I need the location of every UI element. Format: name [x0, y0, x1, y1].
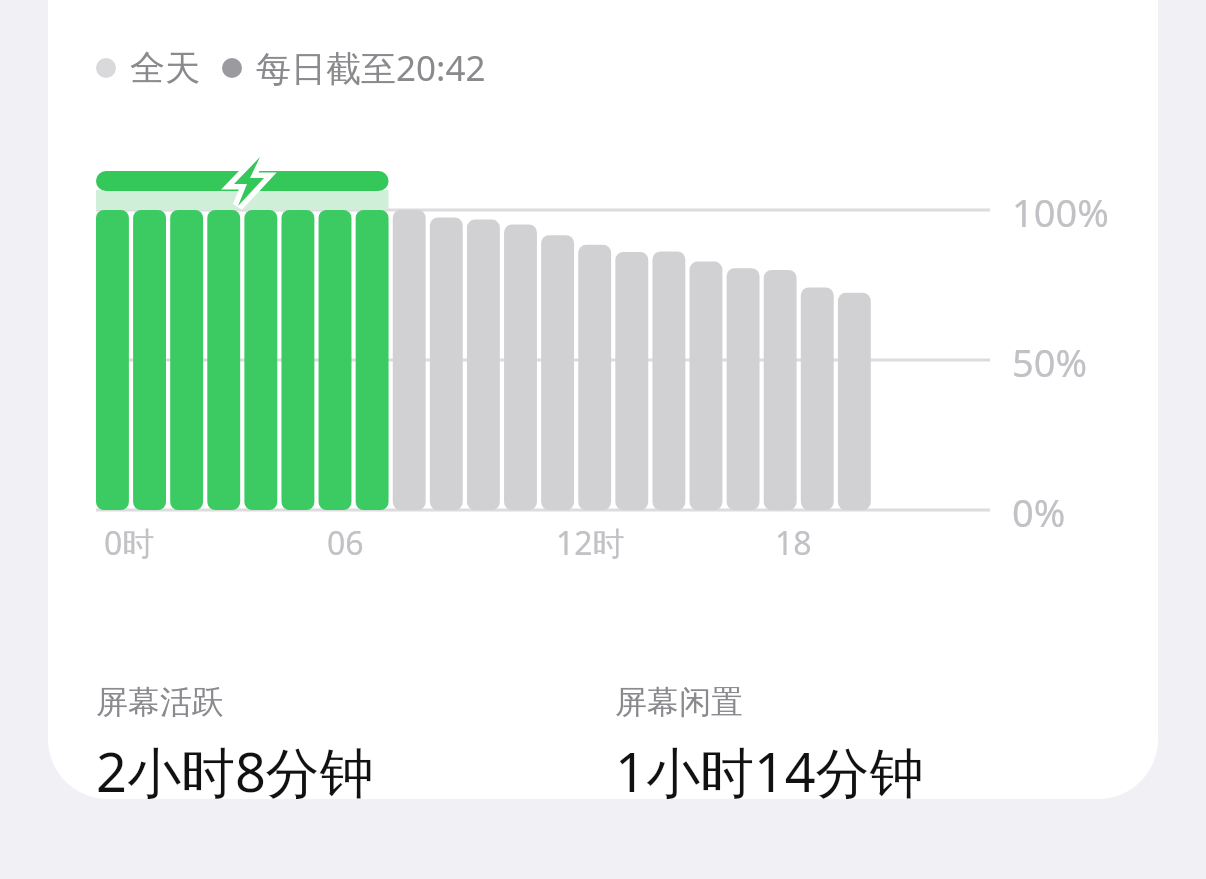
other: 电池电量图表: [0, 0, 1206, 879]
button[interactable]: 屏幕闲置: [615, 682, 924, 808]
staticText: 18: [775, 521, 812, 565]
staticText: 12时: [556, 521, 625, 565]
staticText: 2小时8分钟: [96, 734, 374, 808]
staticText: 1小时14分钟: [615, 734, 924, 808]
button[interactable]: [48, 0, 1158, 799]
button[interactable]: 全天: [96, 44, 486, 92]
staticText: 50%: [1012, 336, 1088, 388]
staticText: 每日截至20:42: [256, 44, 486, 92]
staticText: 屏幕活跃: [96, 682, 224, 722]
staticText: 06: [327, 521, 364, 565]
staticText: 屏幕闲置: [615, 682, 743, 722]
staticText: 100%: [1012, 186, 1109, 238]
button[interactable]: 屏幕活跃: [96, 682, 374, 808]
staticText: 全天: [130, 46, 200, 90]
staticText: 0%: [1012, 486, 1066, 538]
staticText: 0时: [104, 521, 155, 565]
